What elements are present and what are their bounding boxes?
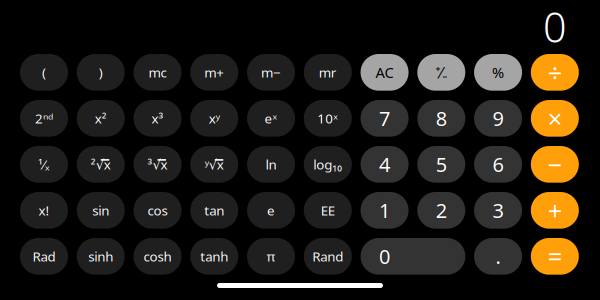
staticText: x² [95, 109, 107, 127]
staticText: m+ [204, 63, 224, 81]
staticText: 2ⁿᵈ [35, 109, 53, 127]
button[interactable]: 10ˣ [304, 100, 352, 137]
button[interactable]: EE [304, 192, 352, 229]
staticText: 4 [379, 151, 390, 178]
button[interactable]: 0 [361, 238, 465, 275]
button[interactable]: cos [133, 192, 181, 229]
staticText: − [548, 147, 562, 181]
button[interactable]: e [247, 192, 295, 229]
button[interactable]: − [531, 146, 579, 183]
button[interactable]: x! [20, 192, 68, 229]
staticText: ¹⁄ₓ [38, 155, 50, 173]
staticText: tanh [200, 247, 228, 265]
button[interactable]: sinh [77, 238, 125, 275]
button[interactable]: ²√x [77, 146, 125, 183]
staticText: 1 [379, 197, 390, 224]
staticText: x! [38, 201, 49, 219]
staticText: mc [148, 63, 166, 81]
button[interactable]: . [474, 238, 522, 275]
staticText: tan [204, 201, 224, 219]
staticText: = [548, 239, 562, 273]
staticText: e [267, 201, 275, 219]
staticText: cosh [143, 247, 171, 265]
staticText: 0 [543, 0, 567, 54]
button[interactable]: ( [20, 54, 68, 91]
button[interactable]: 2ⁿᵈ [20, 100, 68, 137]
button[interactable]: 3 [474, 192, 522, 229]
staticText: xʸ [209, 109, 220, 127]
staticText: Rad [32, 247, 55, 265]
staticText: 5 [436, 151, 447, 178]
button[interactable]: m+ [190, 54, 238, 91]
staticText: ³√x [147, 155, 167, 173]
staticText: log₁₀ [313, 155, 342, 173]
button[interactable]: 5 [417, 146, 465, 183]
button[interactable]: eˣ [247, 100, 295, 137]
staticText: eˣ [264, 109, 277, 127]
staticText: 8 [436, 105, 447, 132]
button[interactable]: ³√x [133, 146, 181, 183]
button[interactable]: 6 [474, 146, 522, 183]
staticText: mr [319, 63, 337, 81]
staticText: m− [261, 63, 281, 81]
button[interactable]: + [531, 192, 579, 229]
staticText: % [492, 63, 504, 82]
button[interactable]: 7 [361, 100, 409, 137]
staticText: ⁺⁄₋ [435, 62, 447, 83]
staticText: sin [92, 201, 109, 219]
staticText: ( [42, 63, 46, 81]
staticText: AC [376, 63, 394, 82]
button[interactable]: × [531, 100, 579, 137]
staticText: 10ˣ [317, 109, 338, 127]
button[interactable]: mc [133, 54, 181, 91]
staticText: ²√x [91, 155, 111, 173]
staticText: . [496, 243, 501, 270]
staticText: 9 [493, 105, 504, 132]
button[interactable]: = [531, 238, 579, 275]
button[interactable]: log₁₀ [304, 146, 352, 183]
staticText: EE [321, 201, 335, 219]
button[interactable]: tanh [190, 238, 238, 275]
button[interactable]: π [247, 238, 295, 275]
button[interactable]: % [474, 54, 522, 91]
button[interactable]: xʸ [190, 100, 238, 137]
button[interactable]: ʸ√x [190, 146, 238, 183]
staticText: x³ [151, 109, 163, 127]
button[interactable]: x² [77, 100, 125, 137]
button[interactable]: cosh [133, 238, 181, 275]
staticText: 0 [379, 243, 390, 270]
staticText: × [548, 101, 562, 135]
staticText: 7 [379, 105, 390, 132]
button[interactable]: tan [190, 192, 238, 229]
button[interactable]: m− [247, 54, 295, 91]
button[interactable]: 8 [417, 100, 465, 137]
staticText: 2 [436, 197, 447, 224]
button[interactable]: mr [304, 54, 352, 91]
button[interactable]: x³ [133, 100, 181, 137]
staticText: π [266, 247, 275, 265]
button[interactable]: ln [247, 146, 295, 183]
button[interactable]: 2 [417, 192, 465, 229]
staticText: ÷ [548, 55, 562, 89]
button[interactable]: 4 [361, 146, 409, 183]
button[interactable]: 1 [361, 192, 409, 229]
button[interactable]: sin [77, 192, 125, 229]
staticText: 6 [493, 151, 504, 178]
staticText: + [548, 193, 562, 227]
button[interactable]: Rand [304, 238, 352, 275]
staticText: ʸ√x [205, 155, 224, 173]
staticText: ) [99, 63, 103, 81]
button[interactable]: 9 [474, 100, 522, 137]
button[interactable]: ÷ [531, 54, 579, 91]
staticText: sinh [88, 247, 113, 265]
staticText: Rand [312, 247, 343, 265]
button[interactable]: AC [361, 54, 409, 91]
staticText: 3 [493, 197, 504, 224]
button[interactable]: ⁺⁄₋ [417, 54, 465, 91]
staticText: ln [265, 155, 276, 173]
button[interactable]: ) [77, 54, 125, 91]
button[interactable]: Rad [20, 238, 68, 275]
staticText: cos [147, 201, 167, 219]
button[interactable]: ¹⁄ₓ [20, 146, 68, 183]
